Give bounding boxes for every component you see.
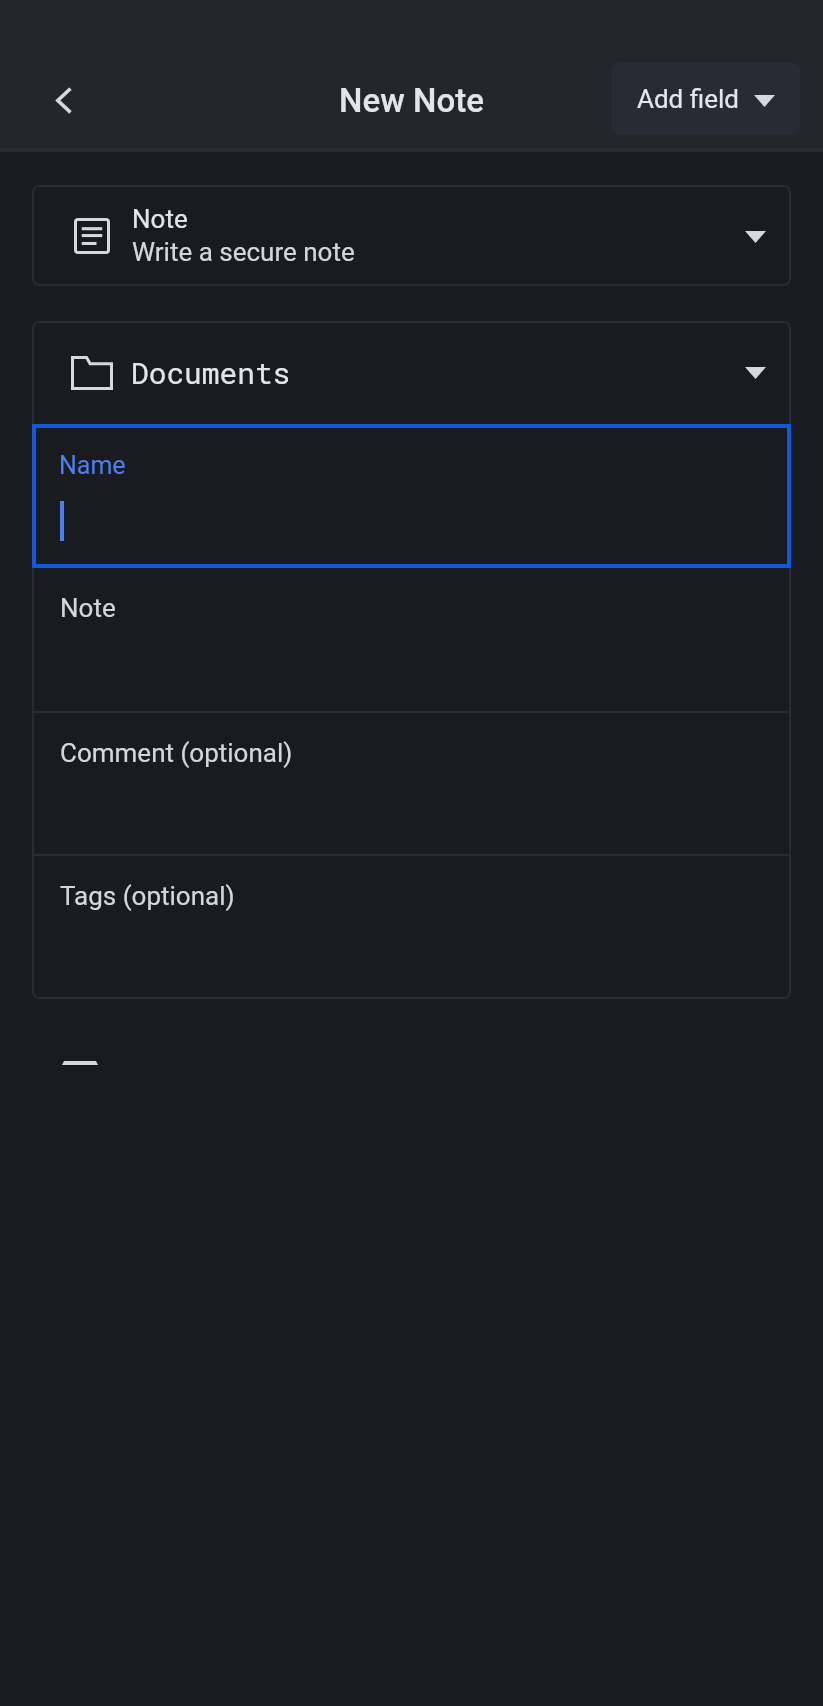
- button[interactable]: Tags (optional): [32, 856, 791, 999]
- staticText: New Note: [0, 81, 823, 120]
- button[interactable]: Note: [32, 568, 791, 711]
- staticText: Documents: [131, 353, 291, 392]
- staticText: Note: [60, 593, 116, 623]
- staticText: Note: [132, 204, 188, 234]
- staticText: Name: [59, 451, 126, 480]
- button[interactable]: Comment (optional): [32, 713, 791, 854]
- staticText: Comment (optional): [60, 738, 293, 768]
- button[interactable]: Add field: [612, 63, 800, 135]
- staticText: Add field: [637, 84, 739, 114]
- staticText: Tags (optional): [60, 881, 235, 911]
- button[interactable]: Name: [32, 424, 791, 568]
- button[interactable]: Note: [32, 185, 791, 286]
- button[interactable]: Documents: [32, 321, 791, 424]
- button[interactable]: Back: [20, 57, 106, 143]
- staticText: Write a secure note: [132, 237, 355, 267]
